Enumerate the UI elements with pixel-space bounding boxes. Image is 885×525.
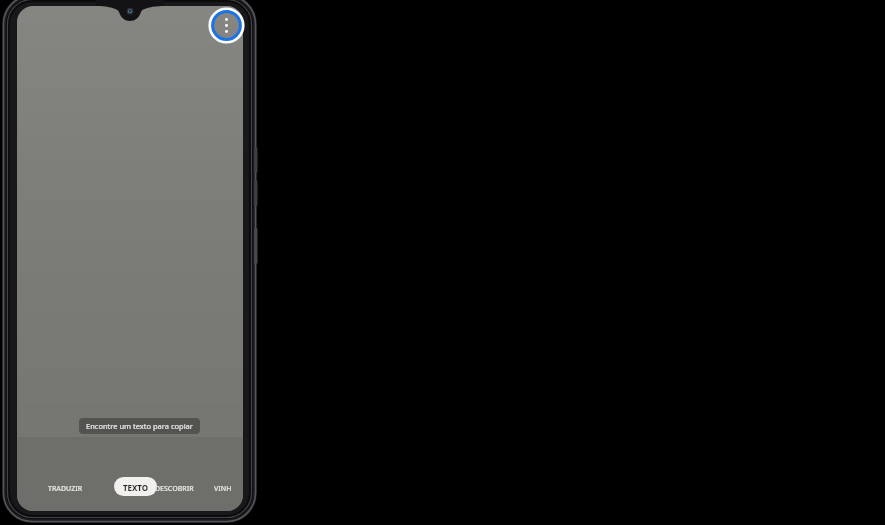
staticText: TEXTO	[114, 482, 157, 493]
button[interactable]: More options	[210, 9, 243, 42]
button[interactable]: Encontre um texto para copiar	[86, 421, 193, 431]
staticText: DESCOBRIR	[155, 484, 194, 494]
button[interactable]: TEXTO	[114, 477, 157, 496]
staticText: TRADUZIR	[48, 484, 83, 494]
button[interactable]: VINH	[214, 484, 232, 494]
button[interactable]: DESCOBRIR	[155, 484, 194, 494]
staticText: Encontre um texto para copiar	[86, 421, 193, 431]
staticText: VINH	[214, 484, 232, 494]
button[interactable]: TRADUZIR	[48, 484, 83, 494]
